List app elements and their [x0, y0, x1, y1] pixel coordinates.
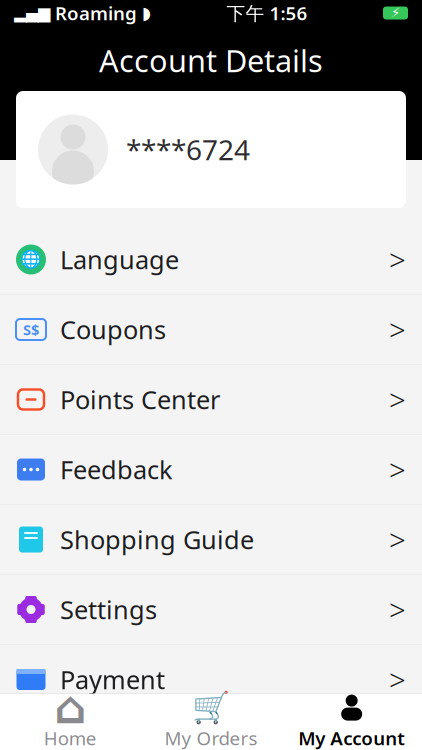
- button[interactable]: S$: [0, 295, 422, 365]
- staticText: >: [389, 520, 406, 559]
- staticText: Language: [60, 243, 179, 276]
- staticText: Points Center: [60, 383, 220, 416]
- staticText: 下午 1:56: [226, 1, 307, 25]
- staticText: ▂▄▆: [14, 4, 50, 22]
- staticText: Feedback: [60, 453, 173, 486]
- button[interactable]: 🌐: [0, 225, 422, 295]
- staticText: Shopping Guide: [60, 523, 254, 556]
- staticText: >: [389, 310, 406, 349]
- staticText: ⚡︎: [391, 5, 400, 20]
- staticText: >: [389, 450, 406, 489]
- button[interactable]: Settings: [0, 575, 422, 645]
- staticText: Settings: [60, 593, 157, 626]
- staticText: >: [389, 660, 406, 699]
- button[interactable]: Payment: [0, 645, 422, 715]
- staticText: Home: [44, 726, 97, 750]
- button[interactable]: Shopping Guide: [0, 505, 422, 575]
- button[interactable]: 🛒: [141, 686, 281, 750]
- staticText: 🛒: [192, 690, 230, 725]
- staticText: Coupons: [60, 313, 166, 346]
- staticText: S$: [23, 320, 39, 339]
- staticText: >: [389, 590, 406, 629]
- staticText: Roaming: [55, 1, 137, 25]
- button[interactable]: My Account: [281, 686, 422, 750]
- staticText: >: [389, 240, 406, 279]
- button[interactable]: Feedback: [0, 435, 422, 505]
- staticText: ◗: [142, 3, 151, 23]
- staticText: 🌐: [20, 250, 42, 269]
- staticText: >: [389, 380, 406, 419]
- button[interactable]: ⌂: [0, 686, 141, 750]
- staticText: ⌂: [54, 682, 86, 733]
- button[interactable]: Points Center: [0, 365, 422, 435]
- staticText: ****6724: [126, 131, 250, 168]
- staticText: Account Details: [99, 40, 323, 81]
- staticText: My Account: [298, 726, 405, 750]
- staticText: Payment: [60, 663, 165, 696]
- staticText: My Orders: [164, 726, 257, 750]
